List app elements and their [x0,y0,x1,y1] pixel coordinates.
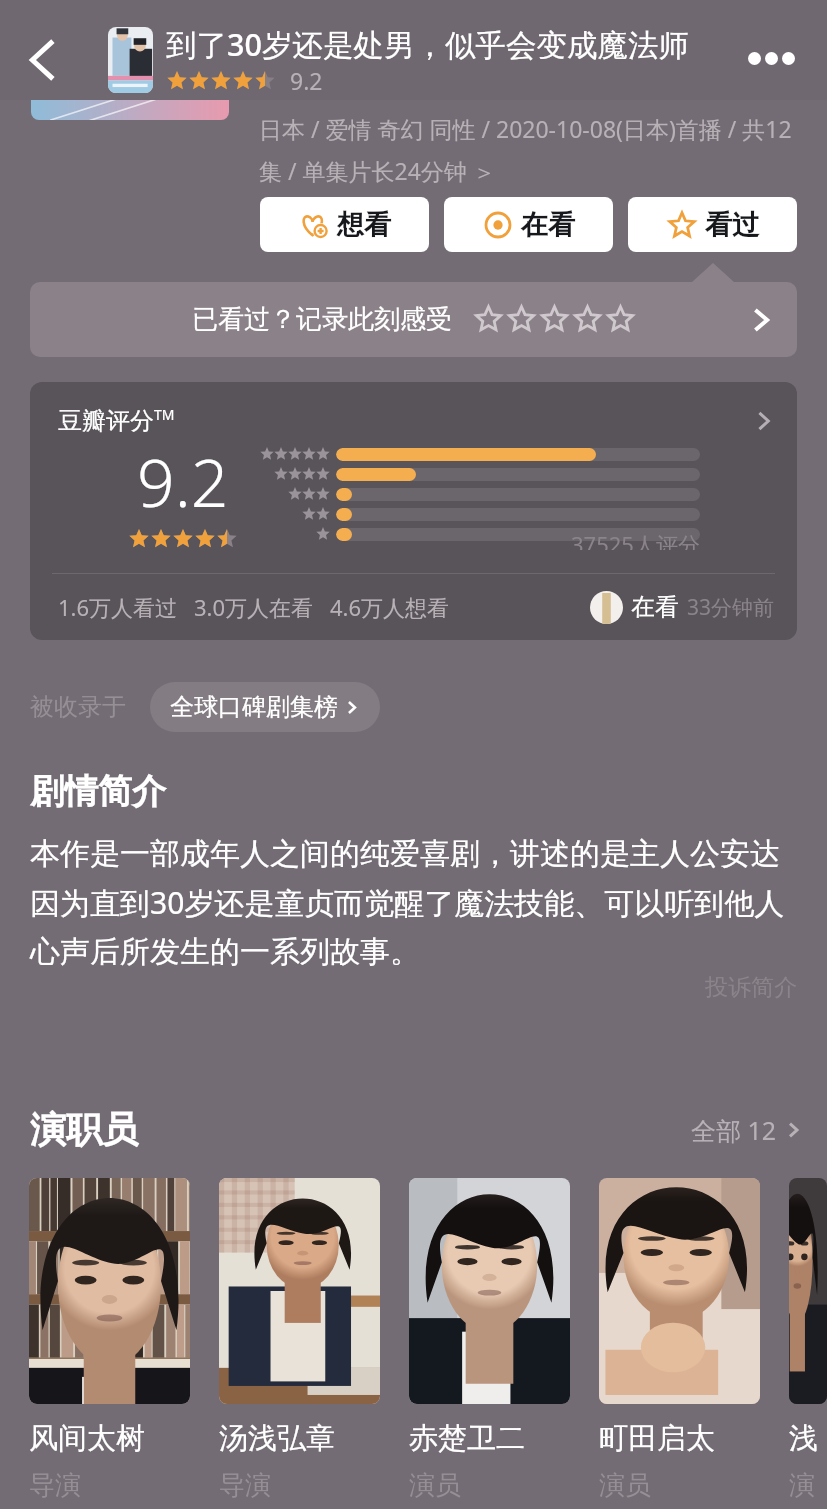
staticText: 本作是一部成年人之间的纯爱喜剧，讲述的是主人公安达因为直到30岁还是童贞而觉醒了… [30,835,791,971]
button[interactable]: 町田启太 [599,1178,760,1502]
staticText: 豆瓣评分 [58,406,154,436]
staticText: 已看过？记录此刻感受 [192,303,452,336]
button[interactable]: 风间太树 [29,1178,190,1502]
button[interactable]: 浅香 [789,1178,827,1502]
staticText: 9.2 [290,65,323,96]
staticText: 风间太树 [29,1420,145,1457]
button[interactable]: More options [735,23,807,93]
staticText: 演员 [599,1469,651,1502]
staticText: 赤楚卫二 [409,1420,525,1457]
button[interactable]: 全部 12 [691,1113,803,1147]
staticText: 33分钟前 [687,593,775,622]
staticText: 导演 [219,1469,271,1502]
staticText: 演员 [409,1469,461,1502]
staticText: 看过 [705,208,759,242]
staticText: 想看 [337,208,391,242]
staticText: 剧情简介 [30,770,166,813]
staticText: 到了30岁还是处男，似乎会变成魔法师 [166,23,689,65]
button[interactable]: 想看 [260,197,429,252]
staticText: 日本 / 爱情 奇幻 同性 / 2020-10-08(日本)首播 / 共12集 … [259,113,799,187]
staticText: 汤浅弘章 [219,1420,335,1457]
staticText: 在看 [631,592,679,622]
staticText: 在看 [521,208,575,242]
button[interactable]: 已看过？记录此刻感受 [30,282,797,357]
button[interactable]: 汤浅弘章 [219,1178,380,1502]
staticText: 町田启太 [599,1420,715,1457]
staticText: 3.0万人在看 [194,592,314,622]
staticText: 9.2 [137,436,229,526]
staticText: 37525人评分 [571,529,700,550]
staticText: 演员 [789,1469,827,1502]
staticText: 全部 12 [691,1113,777,1147]
staticText: TM [154,405,175,424]
staticText: 浅香 [789,1420,827,1457]
staticText: 演职员 [30,1107,138,1152]
staticText: 1.6万人看过 [58,592,178,622]
button[interactable]: 投诉简介 [705,973,797,1002]
button[interactable]: 看过 [628,197,797,252]
button[interactable]: 赤楚卫二 [409,1178,570,1502]
staticText: 全球口碑剧集榜 [170,692,338,722]
staticText: 被收录于 [30,692,126,722]
button[interactable]: 豆瓣评分 [30,382,797,640]
button[interactable]: Back [8,26,76,94]
button[interactable]: 在看 [444,197,613,252]
staticText: 4.6万人想看 [330,592,450,622]
staticText: 导演 [29,1469,81,1502]
button[interactable]: 全球口碑剧集榜 [150,682,380,732]
